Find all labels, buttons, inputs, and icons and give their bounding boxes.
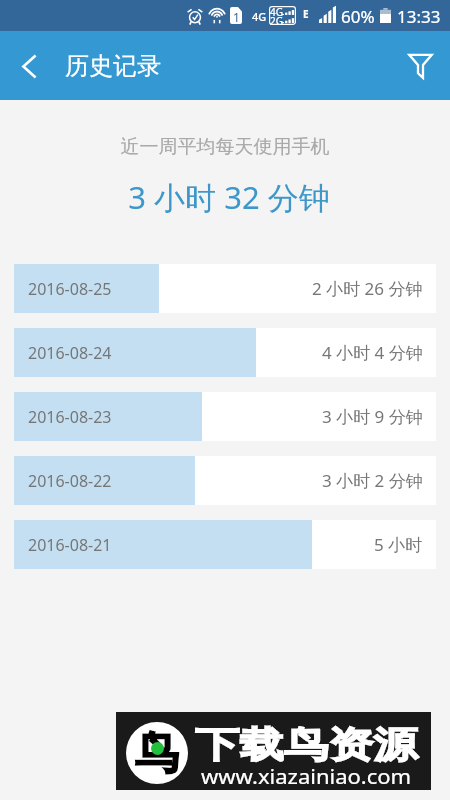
staticText: www.xiazainiao.com — [201, 762, 412, 789]
staticText: 鸟 — [135, 726, 179, 781]
button[interactable]: 2016-08-22 — [14, 456, 436, 505]
staticText: 4G — [270, 5, 283, 19]
staticText: 4G — [252, 9, 267, 24]
staticText: 60% — [341, 5, 375, 28]
staticText: 13:33 — [397, 5, 441, 28]
staticText: E — [303, 7, 309, 21]
button[interactable]: 2016-08-24 — [14, 328, 436, 377]
staticText: 2016-08-21 — [28, 534, 112, 556]
button[interactable]: 2016-08-25 — [14, 264, 436, 313]
staticText: 历史记录 — [65, 51, 161, 81]
button[interactable]: 2016-08-21 — [14, 520, 436, 569]
staticText: 下载鸟资源 — [195, 723, 418, 769]
staticText: 2016-08-22 — [28, 470, 112, 492]
staticText: 1 — [233, 9, 240, 25]
staticText: 2016-08-24 — [28, 342, 112, 364]
button[interactable]: 2016-08-23 — [14, 392, 436, 441]
staticText: 近一周平均每天使用手机 — [0, 135, 450, 159]
button[interactable]: Back — [3, 40, 55, 92]
staticText: 3 小时 9 分钟 — [322, 405, 423, 428]
staticText: 3 小时 2 分钟 — [322, 469, 423, 492]
staticText: 5 小时 — [374, 533, 423, 556]
staticText: 2016-08-25 — [28, 278, 112, 300]
button[interactable]: Filter — [392, 38, 448, 94]
staticText: 4 小时 4 分钟 — [322, 341, 423, 364]
staticText: 2016-08-23 — [28, 406, 112, 428]
staticText: 2 小时 26 分钟 — [312, 277, 423, 300]
staticText: 3 小时 32 分钟 — [4, 176, 450, 218]
staticText: 2G — [270, 14, 283, 28]
